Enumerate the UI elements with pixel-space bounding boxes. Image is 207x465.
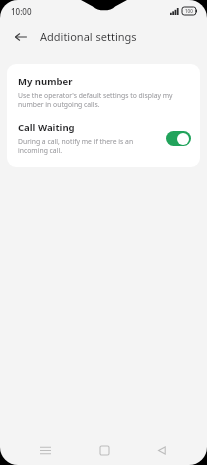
button[interactable]: Call Waiting	[7, 118, 200, 167]
staticText: Use the operator's default settings to d…	[18, 91, 189, 109]
staticText: Additional settings	[40, 29, 137, 44]
staticText: During a call, notify me if there is an …	[18, 137, 160, 155]
button[interactable]: Back	[149, 437, 175, 463]
button[interactable]: Recent apps	[32, 437, 58, 463]
button[interactable]: Back	[11, 27, 31, 47]
staticText: Call Waiting	[18, 121, 75, 134]
staticText: 10:00	[11, 6, 32, 17]
button[interactable]: Home	[91, 437, 117, 463]
staticText: My number	[18, 75, 73, 88]
button[interactable]: Call Waiting toggle	[166, 131, 191, 146]
button[interactable]: My number	[7, 64, 200, 118]
staticText: 100	[185, 8, 193, 14]
